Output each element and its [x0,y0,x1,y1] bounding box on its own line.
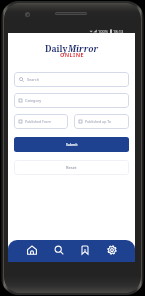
staticText: Category [25,98,42,103]
staticText: 18:13 [113,29,124,34]
button[interactable]: Published up To [74,114,129,129]
button[interactable]: Category [14,93,129,108]
button[interactable]: Home [22,240,42,260]
staticText: Mirror [68,43,99,55]
staticText: Daily [45,43,68,55]
staticText: 100% [98,29,109,34]
staticText: Submit [66,142,78,147]
button[interactable]: Submit [14,137,129,152]
staticText: ONLINE [60,51,84,58]
button[interactable]: Published From [14,114,68,129]
staticText: Search [27,77,40,82]
button[interactable]: Bookmarks [75,240,95,260]
button[interactable]: Settings [102,240,122,260]
button[interactable]: Reset [14,160,129,175]
button[interactable]: Search [14,72,129,87]
staticText: Published From [25,119,51,124]
staticText: Published up To [85,119,112,124]
button[interactable]: Search [49,240,69,260]
staticText: Reset [66,165,77,170]
